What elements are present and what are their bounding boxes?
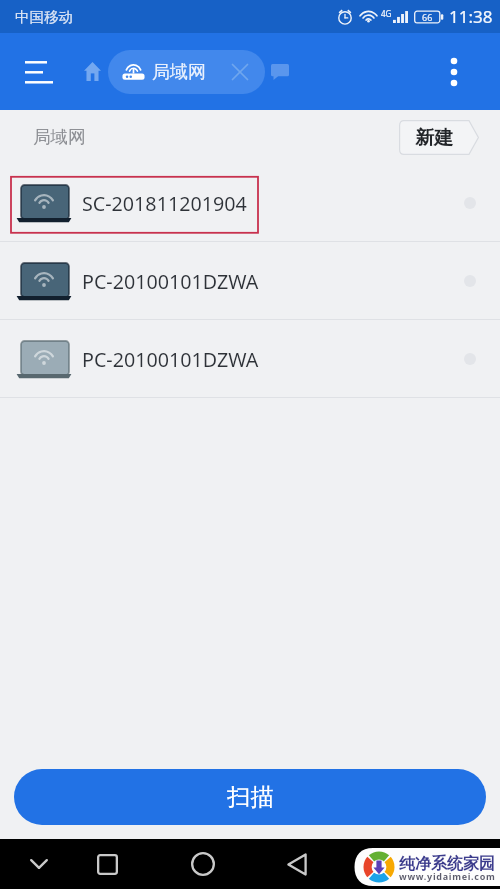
button[interactable]: 局域网: [108, 50, 265, 94]
button[interactable]: Menu: [18, 51, 60, 93]
button[interactable]: Back: [277, 844, 317, 884]
button[interactable]: 新建: [399, 120, 479, 155]
button[interactable]: Recent apps: [87, 844, 127, 884]
staticText: 局域网: [152, 61, 206, 84]
button[interactable]: SC-201811201904: [0, 164, 500, 242]
staticText: 局域网: [33, 126, 86, 148]
button[interactable]: PC-20100101DZWA: [0, 242, 500, 320]
staticText: PC-20100101DZWA: [82, 268, 259, 295]
button[interactable]: Home: [74, 54, 110, 90]
button[interactable]: Clear: [224, 56, 256, 88]
button[interactable]: Home: [183, 844, 223, 884]
staticText: 扫描: [227, 782, 274, 812]
staticText: 11:38: [449, 5, 493, 28]
staticText: www.yidaimei.com: [399, 870, 496, 882]
staticText: 纯净系统家园: [399, 854, 495, 874]
button[interactable]: More options: [434, 52, 474, 92]
button[interactable]: Messages: [262, 54, 298, 90]
staticText: 新建: [415, 126, 453, 150]
staticText: 4G: [381, 8, 392, 19]
button[interactable]: Hide keyboard: [19, 844, 59, 884]
button[interactable]: 扫描: [14, 769, 486, 825]
button[interactable]: PC-20100101DZWA: [0, 320, 500, 398]
staticText: 中国移动: [15, 8, 73, 26]
staticText: SC-201811201904: [82, 190, 247, 217]
staticText: 66: [422, 11, 433, 23]
staticText: PC-20100101DZWA: [82, 346, 259, 373]
